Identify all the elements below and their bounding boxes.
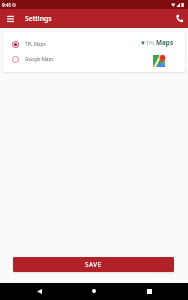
staticText: Maps xyxy=(156,38,174,47)
button[interactable]: Home xyxy=(88,285,100,297)
button[interactable]: Back xyxy=(33,285,45,297)
button[interactable]: Recent apps xyxy=(143,285,155,297)
button[interactable]: Google Maps xyxy=(3,52,185,67)
button[interactable]: Call xyxy=(172,11,186,25)
staticText: 9:41 xyxy=(2,2,12,8)
staticText: Settings xyxy=(25,14,52,23)
button[interactable]: TPL Maps xyxy=(3,37,185,52)
staticText: Google Maps xyxy=(25,56,54,62)
staticText: SAVE xyxy=(85,260,102,269)
staticText: TPL Maps xyxy=(25,41,46,47)
staticText: TPL xyxy=(146,39,156,46)
button[interactable]: SAVE xyxy=(13,257,174,272)
button[interactable]: Open navigation menu xyxy=(3,12,17,26)
